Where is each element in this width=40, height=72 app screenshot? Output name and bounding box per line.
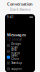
staticText: Jamie Chen xyxy=(11,54,19,61)
staticText: 9:41 xyxy=(7,15,14,19)
staticText: Alex Rivera xyxy=(11,48,19,55)
staticText: 12 unread xyxy=(7,38,22,41)
staticText: Standup xyxy=(11,61,22,65)
staticText: Conversation xyxy=(7,1,33,7)
staticText: Messages xyxy=(7,32,26,37)
staticText: Support xyxy=(11,67,22,70)
staticText: Dark theme xyxy=(9,7,30,12)
staticText: Design team xyxy=(11,42,21,49)
